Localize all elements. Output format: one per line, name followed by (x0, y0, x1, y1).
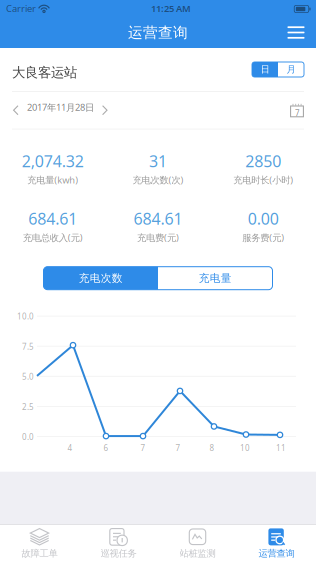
staticText: 0.00 (248, 208, 279, 229)
staticText: 2017年11月28日 (27, 101, 94, 113)
button[interactable]: 充电次数 (43, 267, 158, 290)
staticText: 4 (67, 443, 72, 453)
button[interactable]: Next day (101, 105, 109, 116)
button[interactable]: Pick date (290, 103, 304, 117)
staticText: 684.61 (133, 208, 182, 229)
staticText: 7.5 (22, 341, 34, 352)
staticText: 2,074.32 (22, 150, 84, 172)
staticText: 充电量(kwh) (27, 174, 78, 186)
staticText: 巡视任务 (100, 548, 136, 559)
staticText: 站桩监测 (179, 548, 215, 559)
button[interactable]: 日 (252, 62, 278, 77)
staticText: 5.0 (22, 371, 34, 382)
button[interactable]: 站桩监测 (158, 525, 237, 562)
staticText: 运营查询 (258, 548, 294, 559)
button[interactable]: 运营查询 (237, 525, 316, 562)
staticText: 7 (295, 108, 300, 118)
staticText: 2850 (245, 150, 281, 172)
staticText: 故障工单 (21, 548, 57, 559)
staticText: 7 (175, 443, 180, 453)
button[interactable]: 巡视任务 (79, 525, 158, 562)
button[interactable]: 月 (278, 62, 304, 77)
staticText: 10.0 (17, 311, 34, 322)
button[interactable]: 充电量 (158, 267, 272, 290)
staticText: 0.0 (22, 432, 34, 442)
staticText: 日 (260, 64, 269, 75)
staticText: 7 (140, 443, 145, 453)
staticText: 充电时长(小时) (233, 174, 293, 186)
staticText: 684.61 (28, 208, 77, 229)
staticText: 服务费(元) (242, 231, 284, 244)
staticText: 11:25 AM (151, 2, 191, 15)
staticText: 10 (240, 443, 250, 453)
staticText: 充电费(元) (137, 231, 179, 244)
staticText: 月 (286, 64, 295, 75)
button[interactable]: Menu (284, 20, 308, 44)
button[interactable]: Previous day (12, 105, 20, 116)
staticText: 运营查询 (128, 23, 188, 41)
staticText: 8 (209, 443, 214, 453)
staticText: 11 (276, 443, 286, 453)
staticText: 充电次数 (79, 272, 123, 285)
staticText: 充电总收入(元) (23, 231, 83, 244)
button[interactable]: 故障工单 (0, 525, 79, 562)
staticText: Carrier (6, 2, 36, 15)
staticText: 31 (149, 150, 167, 172)
staticText: 充电次数(次) (132, 174, 183, 186)
staticText: 充电量 (199, 272, 232, 285)
staticText: 6 (103, 443, 108, 453)
staticText: 大良客运站 (12, 64, 77, 81)
staticText: 2.5 (22, 401, 34, 412)
